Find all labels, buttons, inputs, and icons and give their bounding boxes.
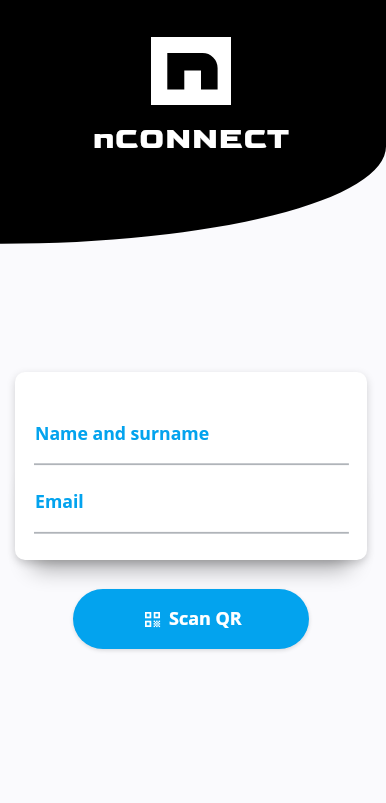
staticText: Name and surname bbox=[35, 421, 210, 445]
staticText: nCONNECT bbox=[93, 120, 290, 157]
button[interactable]: Scan QR bbox=[73, 589, 309, 649]
button[interactable]: Name and surname bbox=[34, 412, 349, 471]
staticText: Scan QR bbox=[169, 606, 242, 631]
other: nConnect logo bbox=[151, 37, 231, 105]
staticText: Email bbox=[35, 489, 84, 513]
button[interactable]: Email bbox=[34, 480, 349, 540]
